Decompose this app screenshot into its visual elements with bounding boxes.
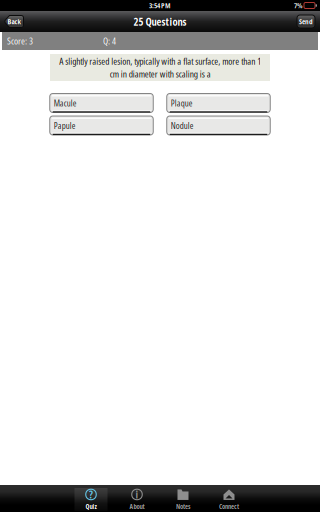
staticText: Q: 4 — [103, 35, 116, 47]
staticText: Send — [299, 17, 313, 26]
staticText: ? — [89, 487, 93, 502]
staticText: Macule — [54, 97, 77, 109]
staticText: 25 Questions — [133, 14, 186, 29]
staticText: Papule — [54, 119, 76, 131]
staticText: Back — [7, 17, 20, 26]
button[interactable]: Papule — [50, 116, 153, 135]
button[interactable]: Back — [4, 15, 24, 28]
staticText: A slightly raised lesion, typically with… — [59, 55, 261, 80]
button[interactable]: i — [120, 488, 153, 511]
button[interactable]: Send — [297, 15, 315, 28]
staticText: Connect — [219, 502, 239, 511]
staticText: 3:54 PM — [149, 1, 171, 10]
staticText: i — [135, 487, 138, 502]
button[interactable]: Plaque — [167, 93, 270, 112]
button[interactable]: Notes — [166, 488, 199, 511]
staticText: About — [129, 502, 144, 511]
staticText: Score: 3 — [7, 35, 33, 47]
staticText: Quiz — [85, 502, 96, 511]
staticText: 7% — [294, 1, 303, 10]
button[interactable]: Connect — [212, 488, 245, 511]
staticText: Nodule — [171, 119, 194, 131]
staticText: Notes — [176, 502, 190, 511]
button[interactable]: Nodule — [167, 116, 270, 135]
button[interactable]: ? — [74, 488, 107, 511]
button[interactable]: Macule — [50, 93, 153, 112]
staticText: Plaque — [171, 97, 193, 109]
